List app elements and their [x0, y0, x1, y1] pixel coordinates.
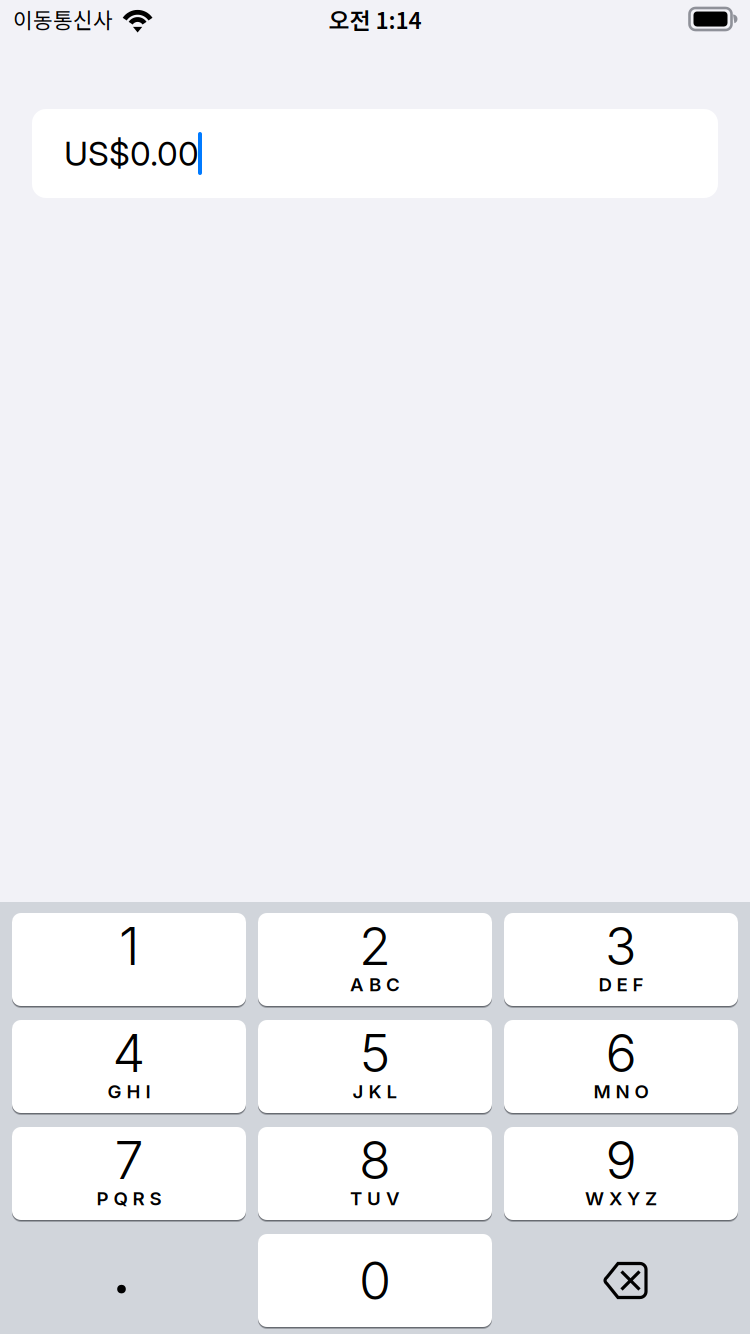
staticText: 1 — [119, 915, 139, 978]
button[interactable]: 9 — [504, 1127, 738, 1220]
button[interactable]: 4 — [12, 1020, 246, 1113]
staticText: 오전 1:14 — [328, 3, 421, 35]
staticText: MNO — [593, 1080, 658, 1103]
staticText: DEF — [598, 973, 653, 996]
staticText: ABC — [350, 973, 410, 996]
staticText: US$0.00 — [64, 133, 199, 174]
staticText: 4 — [112, 1022, 145, 1085]
button[interactable]: 2 — [258, 913, 492, 1006]
staticText: WXYZ — [585, 1187, 667, 1210]
staticText: 3 — [605, 915, 637, 978]
button[interactable]: 5 — [258, 1020, 492, 1113]
staticText: 7 — [114, 1129, 143, 1192]
button[interactable]: Decimal point — [12, 1234, 246, 1327]
button[interactable]: 6 — [504, 1020, 738, 1113]
button[interactable]: Delete — [504, 1234, 738, 1327]
button[interactable]: 1 — [12, 913, 246, 1006]
staticText: 0 — [359, 1249, 391, 1312]
staticText: 5 — [359, 1022, 390, 1085]
staticText: 8 — [359, 1129, 391, 1192]
staticText: PQRS — [96, 1187, 171, 1210]
staticText: 이동통신사 — [13, 4, 113, 34]
staticText: 6 — [605, 1022, 636, 1085]
staticText: 2 — [359, 915, 391, 978]
button[interactable]: 8 — [258, 1127, 492, 1220]
staticText: GHI — [107, 1080, 160, 1103]
staticText: JKL — [352, 1080, 407, 1103]
staticText: 9 — [605, 1129, 636, 1192]
button[interactable]: 0 — [258, 1234, 492, 1327]
button[interactable]: 7 — [12, 1127, 246, 1220]
staticText: TUV — [350, 1187, 410, 1210]
button[interactable]: 3 — [504, 913, 738, 1006]
